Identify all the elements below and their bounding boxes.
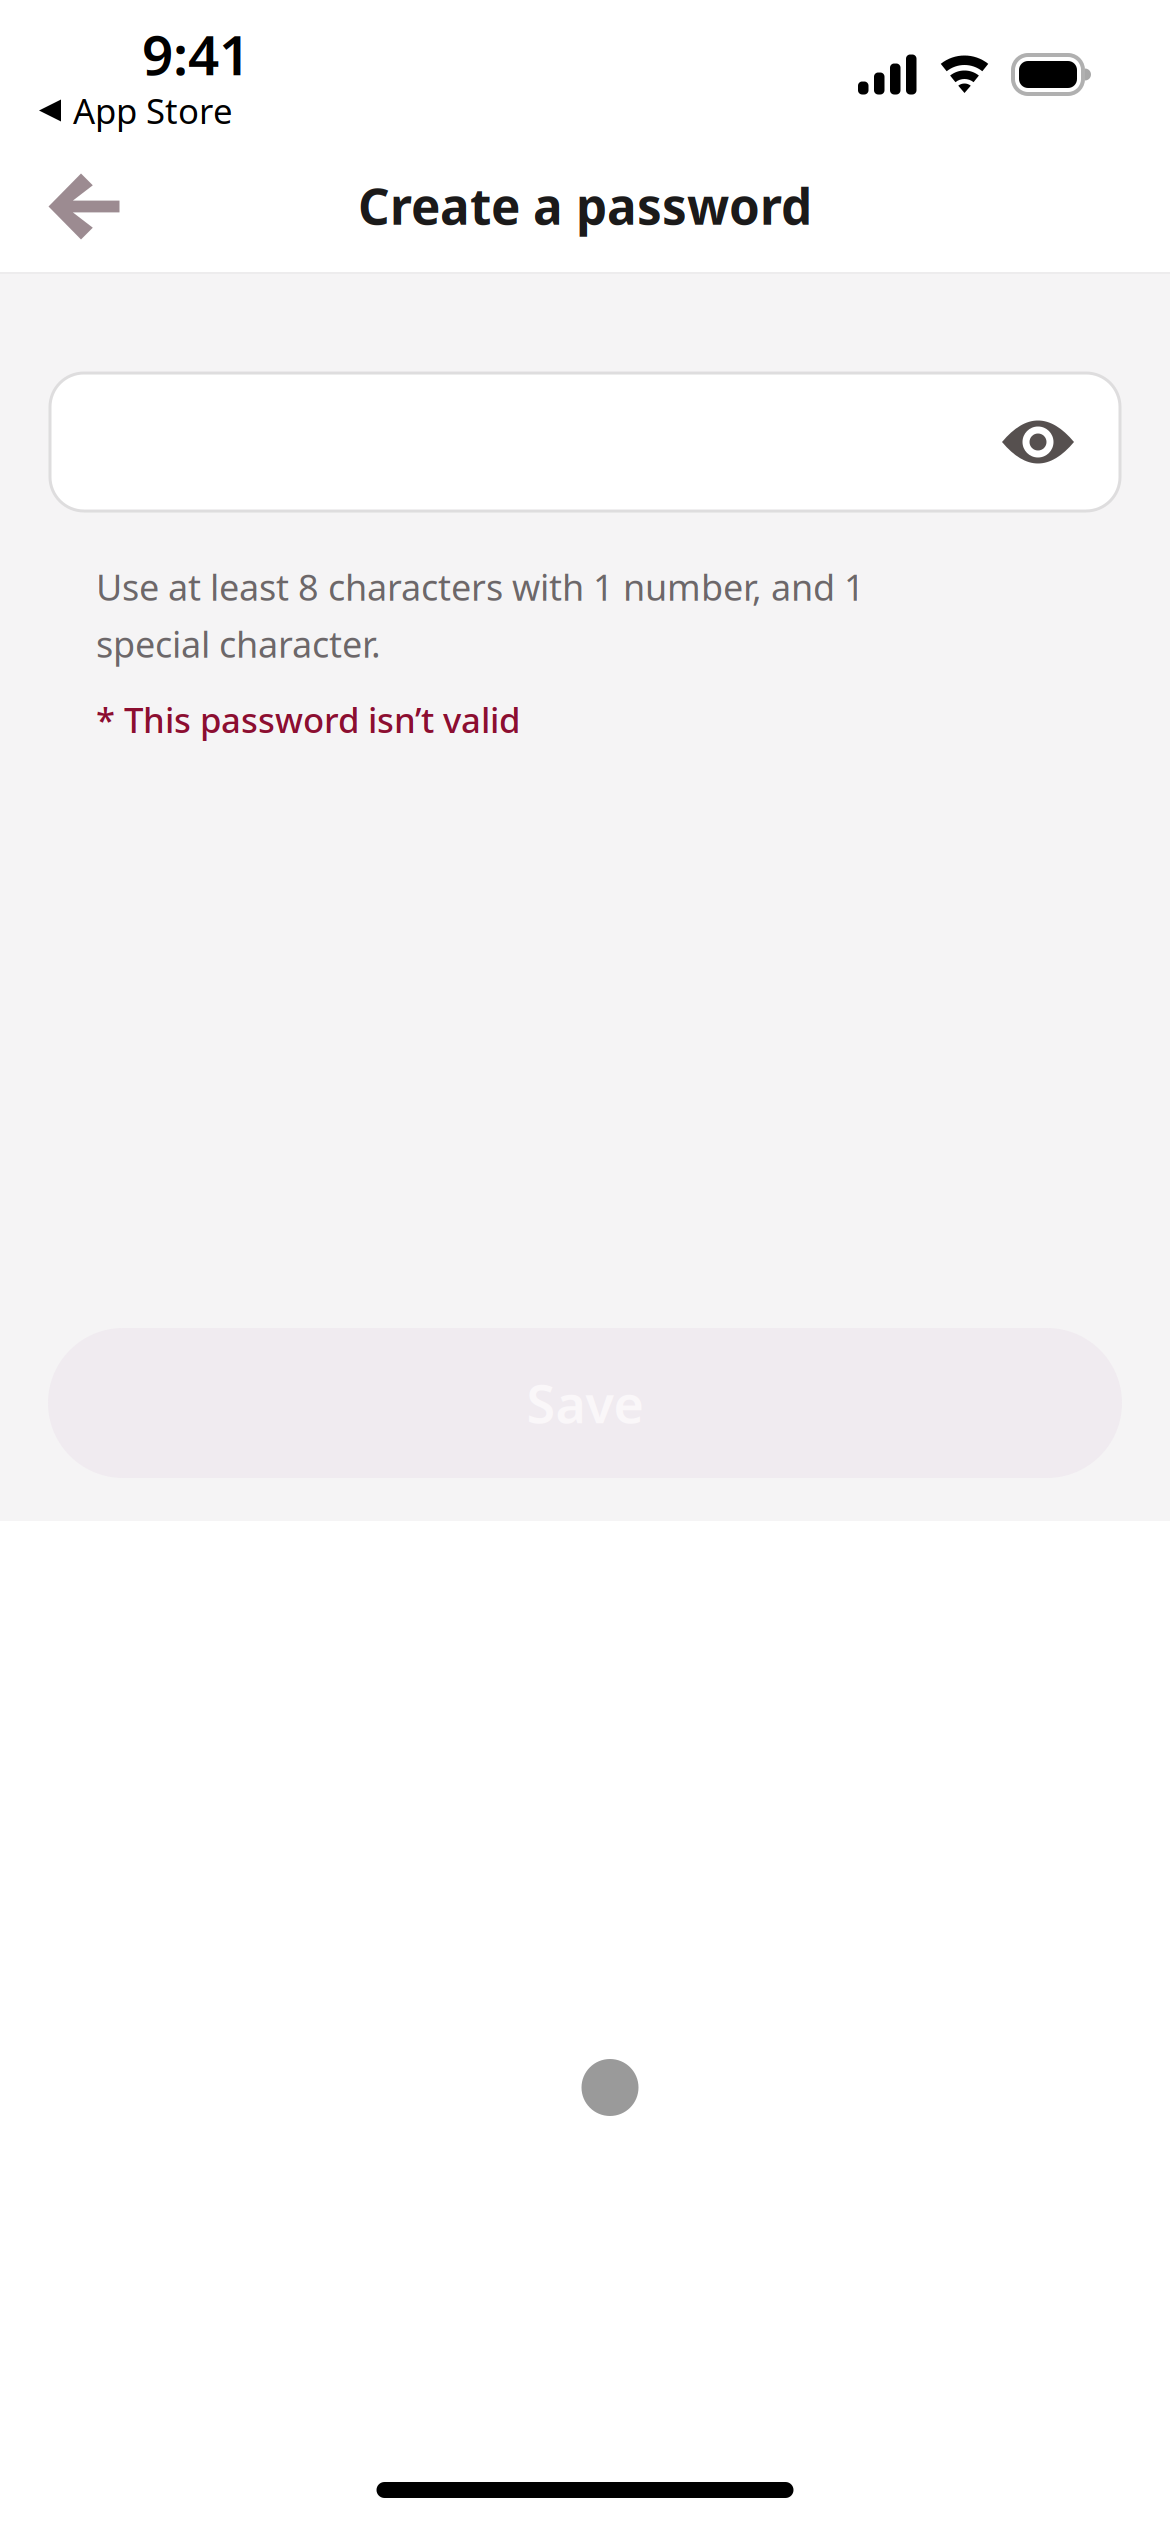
staticText: Save	[526, 1368, 643, 1438]
staticText: Use at least 8 characters with 1 number,…	[96, 563, 865, 668]
button[interactable]: Password	[50, 373, 1120, 511]
button[interactable]: App Store	[39, 87, 233, 133]
button[interactable]: Back	[0, 159, 132, 272]
button[interactable]: Show password	[972, 374, 1104, 510]
staticText: App Store	[73, 87, 233, 133]
staticText: 9:41	[142, 18, 250, 90]
staticText: Create a password	[358, 173, 812, 238]
staticText: * This password isn’t valid	[96, 697, 520, 743]
